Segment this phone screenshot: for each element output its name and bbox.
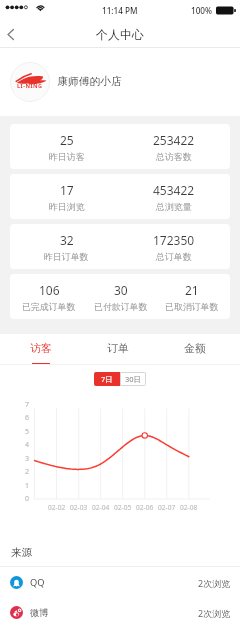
- staticText: 1: [25, 481, 30, 491]
- staticText: 来源: [11, 546, 32, 559]
- button[interactable]: QQ: [0, 567, 240, 598]
- button[interactable]: Back: [0, 20, 28, 48]
- staticText: 总浏览量: [156, 201, 192, 212]
- staticText: LI-NING: [17, 82, 43, 90]
- staticText: 02-07: [158, 503, 176, 512]
- staticText: 02-04: [92, 503, 110, 512]
- staticText: 已完成订单数: [22, 301, 76, 312]
- staticText: 总订单数: [156, 251, 192, 262]
- staticText: 02-06: [136, 503, 154, 512]
- staticText: 25: [60, 132, 74, 148]
- button[interactable]: 7日: [94, 372, 120, 386]
- staticText: 昨日浏览: [49, 201, 85, 212]
- button[interactable]: 订单: [79, 334, 156, 365]
- staticText: 172350: [153, 232, 195, 248]
- staticText: 已取消订单数: [165, 301, 219, 312]
- button[interactable]: 25: [10, 124, 230, 169]
- staticText: 昨日访客: [49, 151, 85, 162]
- button[interactable]: 微博: [0, 598, 240, 627]
- staticText: QQ: [30, 576, 45, 589]
- staticText: 11:14 PM: [102, 5, 138, 16]
- staticText: 0: [25, 494, 30, 504]
- button[interactable]: 30日: [120, 372, 146, 386]
- button[interactable]: 17: [10, 174, 230, 219]
- button[interactable]: 32: [10, 224, 230, 269]
- staticText: 02-02: [48, 503, 66, 512]
- staticText: 个人中心: [96, 27, 144, 42]
- staticText: 17: [60, 182, 74, 198]
- staticText: 总访客数: [156, 151, 192, 162]
- staticText: 订单: [107, 342, 129, 356]
- staticText: 21: [185, 282, 199, 298]
- staticText: 昨日订单数: [44, 251, 89, 262]
- staticText: 02-05: [114, 503, 132, 512]
- staticText: 253422: [153, 132, 195, 148]
- staticText: 7日: [101, 374, 113, 384]
- staticText: 30日: [125, 374, 142, 384]
- staticText: 金额: [184, 342, 206, 356]
- staticText: 453422: [153, 182, 195, 198]
- staticText: 2次浏览: [198, 607, 231, 619]
- staticText: 已付款订单数: [94, 301, 148, 312]
- staticText: 微博: [30, 607, 49, 619]
- button[interactable]: 106: [10, 274, 230, 319]
- staticText: 30: [114, 282, 128, 298]
- button[interactable]: 访客: [3, 334, 79, 365]
- staticText: 02-03: [70, 503, 88, 512]
- staticText: 康师傅的小店: [57, 75, 122, 89]
- staticText: 32: [60, 232, 74, 248]
- staticText: 2次浏览: [198, 577, 231, 589]
- staticText: 访客: [30, 342, 52, 356]
- staticText: 02-08: [180, 503, 198, 512]
- staticText: 7: [25, 400, 30, 410]
- staticText: 4: [25, 440, 30, 450]
- staticText: 5: [25, 427, 30, 437]
- button[interactable]: 金额: [156, 334, 233, 365]
- staticText: 3: [25, 454, 30, 464]
- staticText: 100%: [191, 5, 213, 16]
- staticText: 6: [25, 413, 30, 423]
- staticText: 2: [25, 467, 30, 477]
- staticText: 106: [39, 282, 60, 298]
